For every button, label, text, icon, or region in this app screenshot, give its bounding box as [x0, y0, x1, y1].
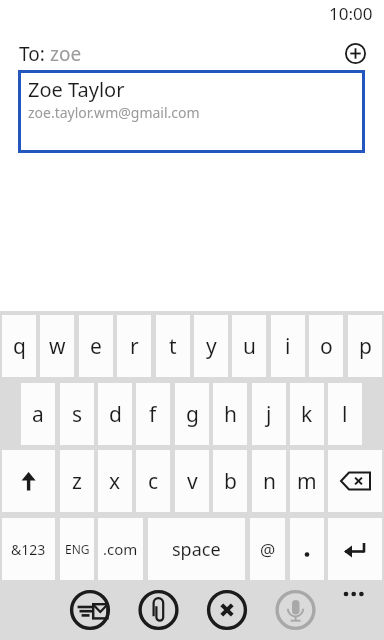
button[interactable]: d	[98, 383, 132, 445]
staticText: e	[90, 332, 102, 361]
button[interactable]: To:	[19, 41, 82, 67]
staticText: ENG	[65, 541, 90, 557]
button[interactable]: m	[290, 450, 324, 512]
staticText: r	[130, 332, 139, 361]
button[interactable]	[68, 588, 112, 632]
button[interactable]	[2, 450, 55, 512]
staticText: q	[13, 332, 26, 361]
staticText: To:	[19, 41, 45, 67]
staticText: k	[301, 400, 313, 429]
button[interactable]	[337, 35, 374, 72]
button[interactable]	[290, 518, 324, 580]
button[interactable]: z	[60, 450, 94, 512]
button[interactable]: &123	[2, 518, 55, 580]
button[interactable]: s	[60, 383, 94, 445]
staticText: u	[243, 332, 256, 361]
staticText: s	[72, 400, 83, 429]
button[interactable]: Zoe Taylor	[18, 70, 365, 153]
staticText: space	[172, 537, 221, 562]
staticText: i	[285, 332, 291, 361]
button[interactable]: q	[2, 315, 36, 377]
button[interactable]: e	[79, 315, 113, 377]
staticText: t	[169, 332, 177, 361]
button[interactable]: n	[252, 450, 286, 512]
button[interactable]: y	[194, 315, 228, 377]
staticText: y	[206, 332, 217, 361]
button[interactable]: w	[40, 315, 74, 377]
button[interactable]	[205, 588, 249, 632]
staticText: x	[109, 467, 121, 496]
button[interactable]: g	[175, 383, 209, 445]
staticText: c	[148, 467, 159, 496]
staticText: h	[224, 400, 237, 429]
button[interactable]: space	[148, 518, 245, 580]
button[interactable]: o	[309, 315, 343, 377]
staticText: d	[109, 400, 122, 429]
staticText: &123	[11, 540, 46, 559]
button[interactable]: c	[136, 450, 170, 512]
button[interactable]: t	[156, 315, 190, 377]
staticText: p	[359, 332, 372, 361]
staticText: 10:00	[329, 2, 373, 25]
button[interactable]: @	[250, 518, 285, 580]
staticText: g	[186, 400, 199, 429]
button[interactable]	[328, 518, 382, 580]
button[interactable]	[136, 588, 180, 632]
button[interactable]	[328, 450, 382, 512]
button[interactable]: v	[175, 450, 209, 512]
staticText: l	[342, 400, 348, 429]
button[interactable]: l	[328, 383, 362, 445]
button[interactable]: f	[136, 383, 170, 445]
button[interactable]: x	[98, 450, 132, 512]
staticText: n	[263, 467, 276, 496]
staticText: .com	[103, 539, 138, 559]
button[interactable]: p	[348, 315, 382, 377]
staticText: j	[266, 400, 272, 429]
staticText: @	[260, 538, 276, 561]
button[interactable]: ENG	[60, 518, 94, 580]
button[interactable]	[273, 588, 317, 632]
button[interactable]: i	[271, 315, 305, 377]
staticText: w	[49, 332, 66, 361]
button[interactable]: r	[117, 315, 151, 377]
staticText: Zoe Taylor	[28, 76, 125, 103]
staticText: a	[32, 400, 44, 429]
button[interactable]: u	[232, 315, 266, 377]
staticText: b	[224, 467, 237, 496]
button[interactable]	[334, 583, 374, 605]
staticText: f	[149, 400, 157, 429]
staticText: zoe.taylor.wm@gmail.com	[28, 103, 200, 122]
button[interactable]: .com	[98, 518, 143, 580]
staticText: zoe	[50, 41, 82, 67]
staticText: o	[320, 332, 333, 361]
button[interactable]: h	[213, 383, 247, 445]
staticText: v	[187, 467, 198, 496]
staticText: z	[72, 467, 82, 496]
button[interactable]: b	[213, 450, 247, 512]
button[interactable]: a	[21, 383, 55, 445]
button[interactable]: k	[290, 383, 324, 445]
button[interactable]: j	[252, 383, 286, 445]
staticText: m	[297, 467, 317, 496]
